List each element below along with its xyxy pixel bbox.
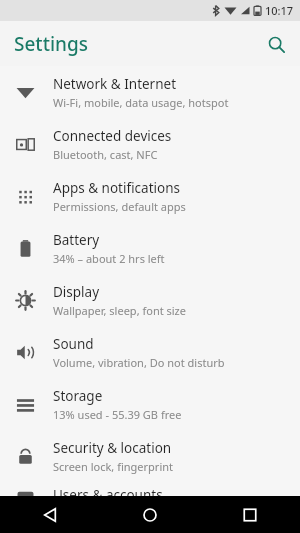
button[interactable]: Connected devices <box>0 118 300 170</box>
staticText: Display <box>53 283 100 301</box>
staticText: 34% – about 2 hrs left <box>53 251 165 266</box>
button[interactable]: Recents <box>200 496 300 533</box>
staticText: Apps & notifications <box>53 179 180 197</box>
staticText: Connected devices <box>53 127 172 145</box>
staticText: Storage <box>53 387 103 405</box>
staticText: Wi-Fi, mobile, data usage, hotspot <box>53 95 229 110</box>
staticText: Volume, vibration, Do not disturb <box>53 355 225 370</box>
button[interactable]: Storage <box>0 378 300 430</box>
button[interactable]: Network & Internet <box>0 66 300 118</box>
staticText: Network & Internet <box>53 75 177 93</box>
staticText: Battery <box>53 231 100 249</box>
button[interactable]: Home <box>100 496 200 533</box>
staticText: Screen lock, fingerprint <box>53 459 174 474</box>
staticText: Users & accounts <box>53 486 163 504</box>
staticText: Permissions, default apps <box>53 199 186 214</box>
staticText: 10:17 <box>265 3 294 18</box>
staticText: 13% used - 55.39 GB free <box>53 407 182 422</box>
staticText: Sound <box>53 335 94 353</box>
button[interactable]: Sound <box>0 326 300 378</box>
button[interactable]: Back <box>0 496 100 533</box>
button[interactable]: Apps & notifications <box>0 170 300 222</box>
staticText: Bluetooth, cast, NFC <box>53 147 158 162</box>
staticText: Security & location <box>53 439 172 457</box>
staticText: Settings <box>14 31 88 57</box>
staticText: Wallpaper, sleep, font size <box>53 303 186 318</box>
button[interactable]: Security & location <box>0 430 300 482</box>
button[interactable]: Battery <box>0 222 300 274</box>
button[interactable]: Display <box>0 274 300 326</box>
button[interactable]: Search <box>259 27 293 61</box>
button[interactable]: Users & accounts <box>0 482 300 508</box>
